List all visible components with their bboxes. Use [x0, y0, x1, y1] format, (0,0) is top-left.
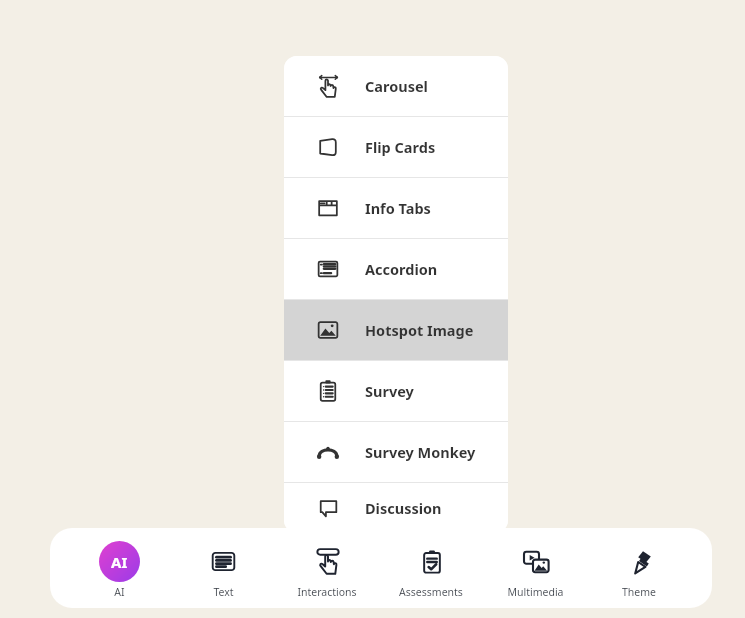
- staticText: Discussion: [365, 498, 442, 518]
- staticText: Carousel: [365, 76, 428, 96]
- button[interactable]: Theme: [587, 537, 691, 603]
- staticText: Info Tabs: [365, 198, 431, 218]
- button[interactable]: Carousel: [284, 56, 508, 116]
- button[interactable]: Accordion: [284, 239, 508, 299]
- staticText: Text: [213, 585, 234, 599]
- button[interactable]: Survey Monkey: [284, 422, 508, 482]
- button[interactable]: Multimedia: [483, 537, 587, 603]
- button[interactable]: Assessments: [379, 537, 483, 603]
- button[interactable]: Hotspot Image: [284, 300, 508, 360]
- staticText: Accordion: [365, 259, 438, 279]
- staticText: Survey Monkey: [365, 442, 476, 462]
- staticText: Hotspot Image: [365, 320, 474, 340]
- staticText: AI: [111, 552, 128, 572]
- staticText: Theme: [622, 585, 656, 599]
- button[interactable]: Survey: [284, 361, 508, 421]
- button[interactable]: Text: [171, 537, 275, 603]
- staticText: Survey: [365, 381, 414, 401]
- staticText: Assessments: [399, 585, 463, 599]
- button[interactable]: Interactions: [275, 537, 379, 603]
- staticText: Interactions: [297, 585, 357, 599]
- button[interactable]: Discussion: [284, 483, 508, 533]
- button[interactable]: Info Tabs: [284, 178, 508, 238]
- button[interactable]: Flip Cards: [284, 117, 508, 177]
- staticText: AI: [114, 585, 125, 599]
- staticText: Multimedia: [507, 585, 564, 599]
- staticText: Flip Cards: [365, 137, 436, 157]
- button[interactable]: AI: [67, 537, 171, 603]
